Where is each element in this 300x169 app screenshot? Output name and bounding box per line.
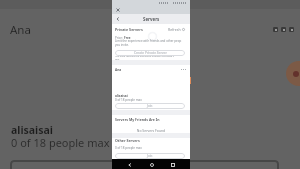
staticText: Create Private Server (134, 51, 167, 55)
staticText: Price: (115, 36, 124, 40)
button[interactable]: Action (273, 27, 278, 32)
button[interactable]: Join (115, 153, 185, 159)
button[interactable]: Action (281, 27, 286, 32)
button[interactable]: Back (115, 16, 121, 22)
button[interactable]: More options (181, 69, 186, 70)
staticText: Ana (115, 68, 122, 72)
button[interactable]: Join (115, 103, 185, 109)
staticText: Servers (143, 16, 160, 22)
staticText: No Servers Found (112, 128, 190, 133)
staticText: Join (147, 104, 153, 108)
button[interactable] (10, 160, 279, 169)
staticText: alisaisai (115, 94, 128, 98)
button[interactable]: Close (115, 7, 121, 13)
staticText: 0 of 18 people max (11, 135, 110, 150)
staticText: Other Servers (115, 138, 140, 143)
button[interactable]: Home (148, 161, 155, 168)
staticText: 0 of 18 people max (115, 98, 142, 102)
staticText: Join (147, 154, 153, 158)
button[interactable]: Create Private Server (115, 50, 185, 56)
staticText: alisaisai (11, 123, 53, 137)
staticText: Private Servers (115, 27, 143, 32)
staticText: Limit the experience with friends and ot… (115, 39, 182, 47)
button[interactable]: Action (289, 27, 294, 32)
staticText: Ana (10, 22, 31, 38)
staticText: Free (124, 36, 131, 40)
staticText: 0 of 18 people max (115, 146, 142, 150)
staticText: Servers My Friends Are In (115, 117, 160, 122)
button[interactable]: Back (126, 161, 133, 168)
button[interactable]: Refresh (168, 27, 185, 32)
staticText: Refresh (168, 27, 181, 32)
staticText: You have reached the maximum number of p… (115, 54, 174, 60)
button[interactable]: Recent apps (169, 161, 176, 168)
